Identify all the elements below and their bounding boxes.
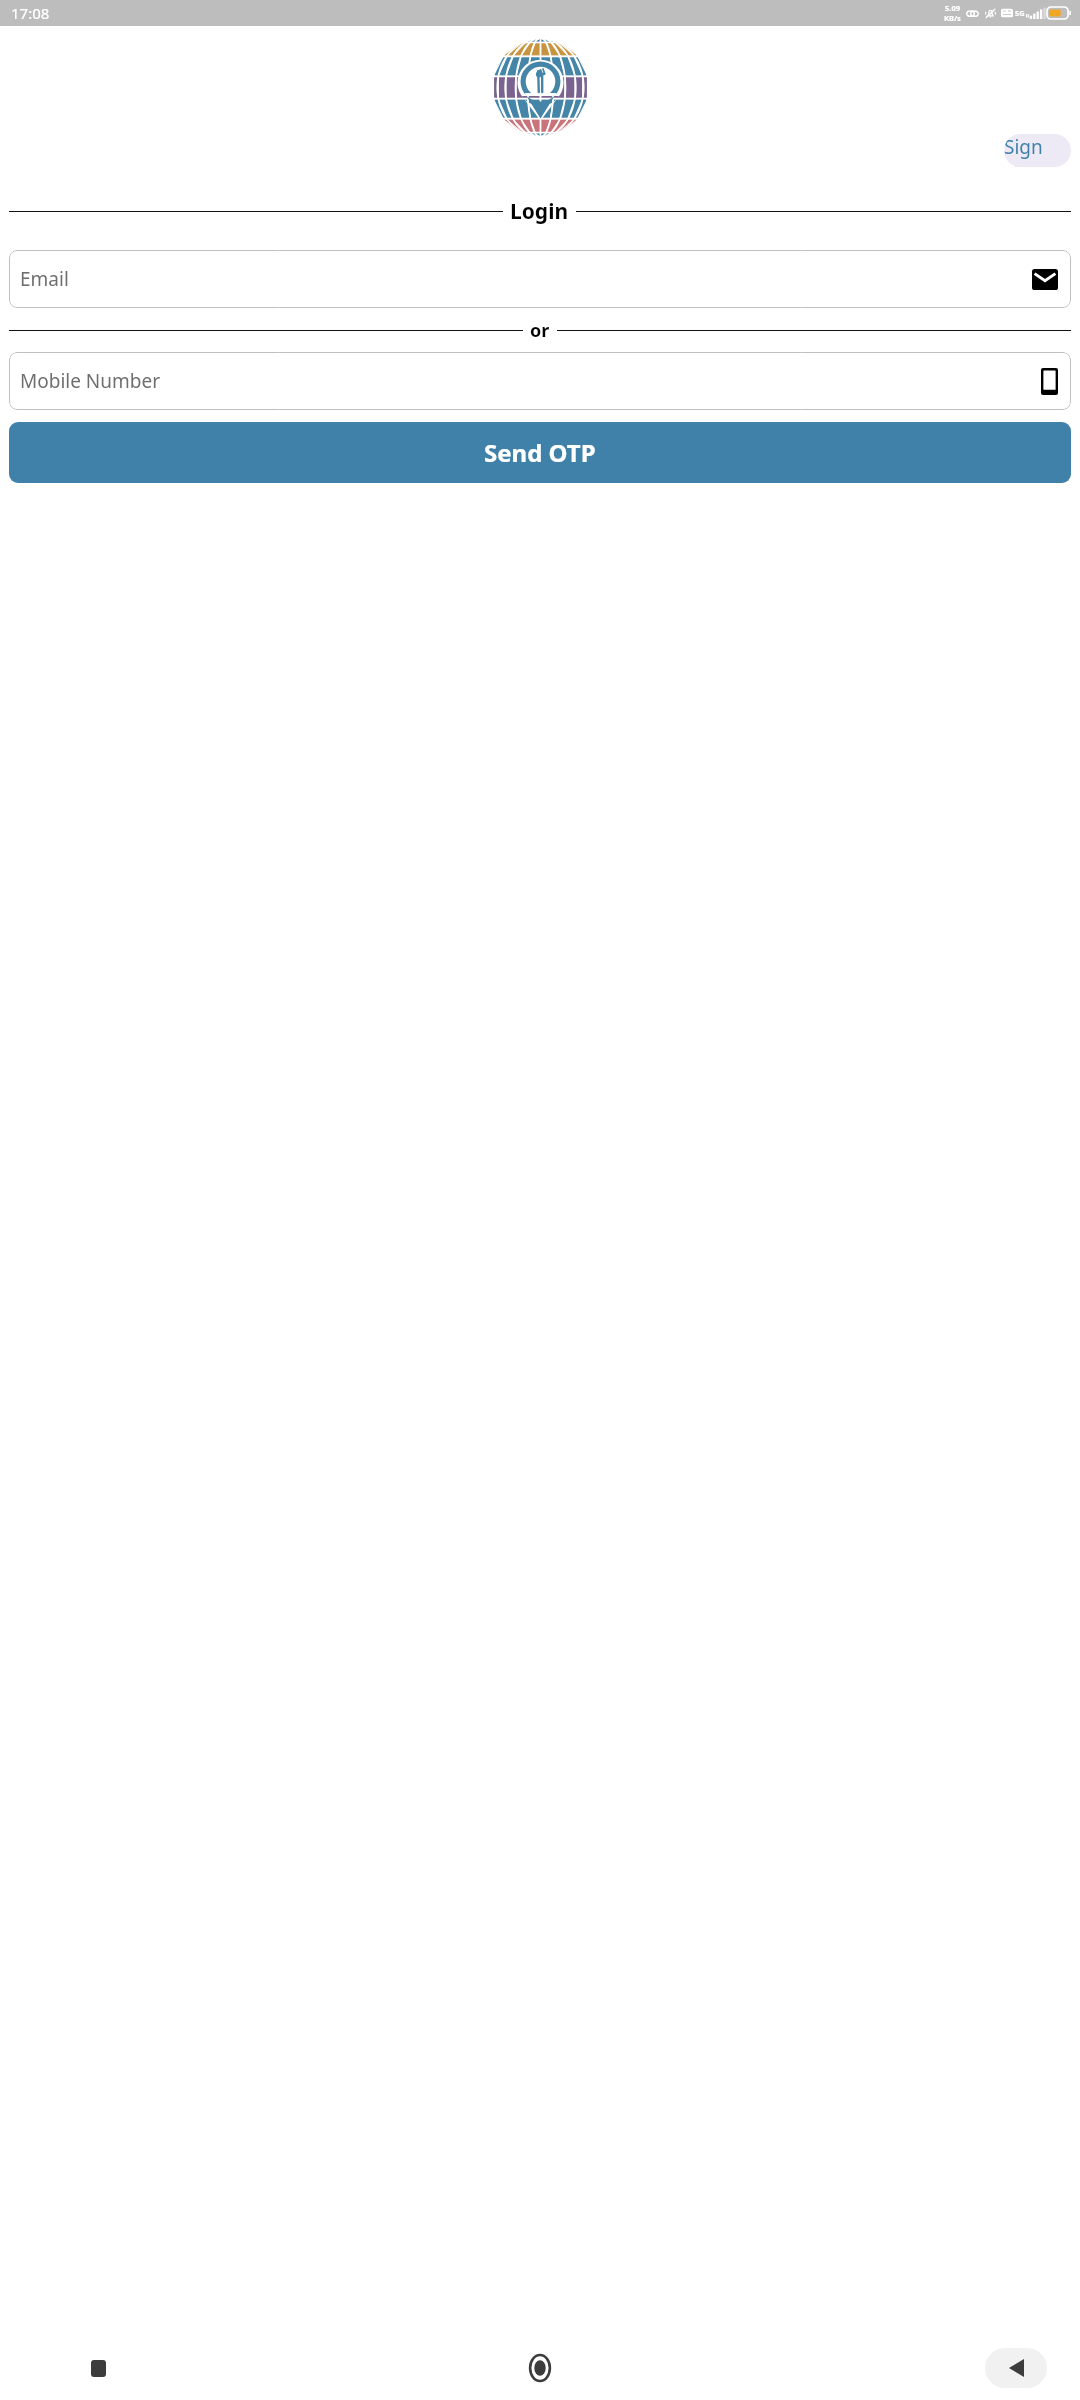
staticText: Sign Up xyxy=(1004,134,1071,167)
staticText: Email xyxy=(20,266,69,292)
staticText: Login xyxy=(510,197,569,226)
staticText: 5.09 xyxy=(945,3,960,13)
button[interactable]: Mobile Number xyxy=(9,352,1071,410)
button[interactable]: Back xyxy=(985,2348,1047,2388)
button[interactable]: Email xyxy=(9,250,1071,308)
staticText: 5G xyxy=(1015,8,1025,18)
staticText: KB/s xyxy=(944,13,961,23)
staticText: or xyxy=(530,318,550,343)
other: Mobile number xyxy=(1041,368,1058,395)
staticText: Send OTP xyxy=(484,436,596,469)
other: Email xyxy=(1032,269,1058,290)
button[interactable]: Send OTP xyxy=(9,422,1071,483)
button[interactable]: Recent apps xyxy=(76,2346,120,2390)
staticText: 17:08 xyxy=(11,3,50,23)
button[interactable]: Home xyxy=(516,2344,564,2392)
staticText: Mobile Number xyxy=(20,368,161,394)
button[interactable]: Sign Up xyxy=(1004,134,1071,167)
